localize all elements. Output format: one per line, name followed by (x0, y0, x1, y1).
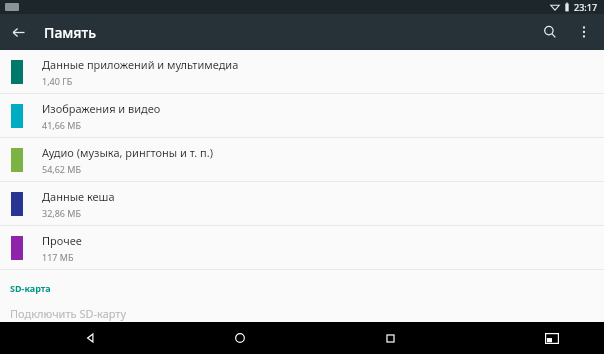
staticText: Память (44, 23, 97, 42)
staticText: Подключить SD-карту (10, 306, 127, 321)
button[interactable]: More options (568, 16, 600, 48)
button[interactable]: Back (74, 322, 106, 354)
button[interactable]: Back (0, 14, 36, 50)
button[interactable]: Подключить SD-карту (0, 306, 604, 322)
button[interactable]: Прочее (0, 226, 604, 269)
button[interactable]: Search (532, 14, 568, 50)
button[interactable]: Данные приложений и мультимедиа (0, 50, 604, 93)
staticText: 41,66 МБ (42, 119, 82, 131)
staticText: 32,86 МБ (42, 207, 82, 219)
staticText: Изображения и видео (42, 101, 161, 116)
staticText: Прочее (42, 233, 82, 248)
button[interactable]: Изображения и видео (0, 94, 604, 137)
button[interactable]: Screenshot (536, 322, 568, 354)
staticText: Данные кеша (42, 189, 115, 204)
staticText: 54,62 МБ (42, 163, 82, 175)
button[interactable]: Home (224, 322, 256, 354)
staticText: Данные приложений и мультимедиа (42, 57, 239, 72)
staticText: 23:17 (574, 1, 598, 13)
button[interactable]: Recent apps (374, 322, 406, 354)
staticText: 1,40 ГБ (42, 75, 73, 87)
staticText: Аудио (музыка, рингтоны и т. п.) (42, 145, 214, 160)
button[interactable]: Данные кеша (0, 182, 604, 225)
button[interactable]: Аудио (музыка, рингтоны и т. п.) (0, 138, 604, 181)
staticText: 117 МБ (42, 251, 74, 263)
staticText: SD-карта (10, 282, 51, 294)
